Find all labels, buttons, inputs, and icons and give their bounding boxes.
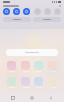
button[interactable]: App 8 xyxy=(47,76,58,89)
button[interactable]: Quick toggle 2 xyxy=(13,8,20,15)
button[interactable]: Back xyxy=(46,93,56,102)
button[interactable]: Quick toggle 1 xyxy=(3,8,10,15)
button[interactable]: App 3 xyxy=(33,60,44,73)
button[interactable]: App 4 xyxy=(47,60,58,73)
button[interactable] xyxy=(3,17,31,22)
button[interactable]: Quick toggle 5 xyxy=(44,8,51,15)
button[interactable]: Home xyxy=(27,93,37,102)
button[interactable]: App 2 xyxy=(20,60,31,73)
button[interactable]: Quick toggle 4 xyxy=(34,8,41,15)
button[interactable]: Search xyxy=(6,49,58,56)
button[interactable]: Quick toggle 3 xyxy=(23,8,30,15)
button[interactable]: App 7 xyxy=(33,76,44,89)
button[interactable] xyxy=(33,17,61,22)
button[interactable]: Recents xyxy=(8,93,18,102)
button[interactable]: App 6 xyxy=(20,76,31,89)
button[interactable]: App 5 xyxy=(6,76,17,89)
button[interactable]: Quick toggle 6 xyxy=(54,8,61,15)
button[interactable]: App 1 xyxy=(6,60,17,73)
